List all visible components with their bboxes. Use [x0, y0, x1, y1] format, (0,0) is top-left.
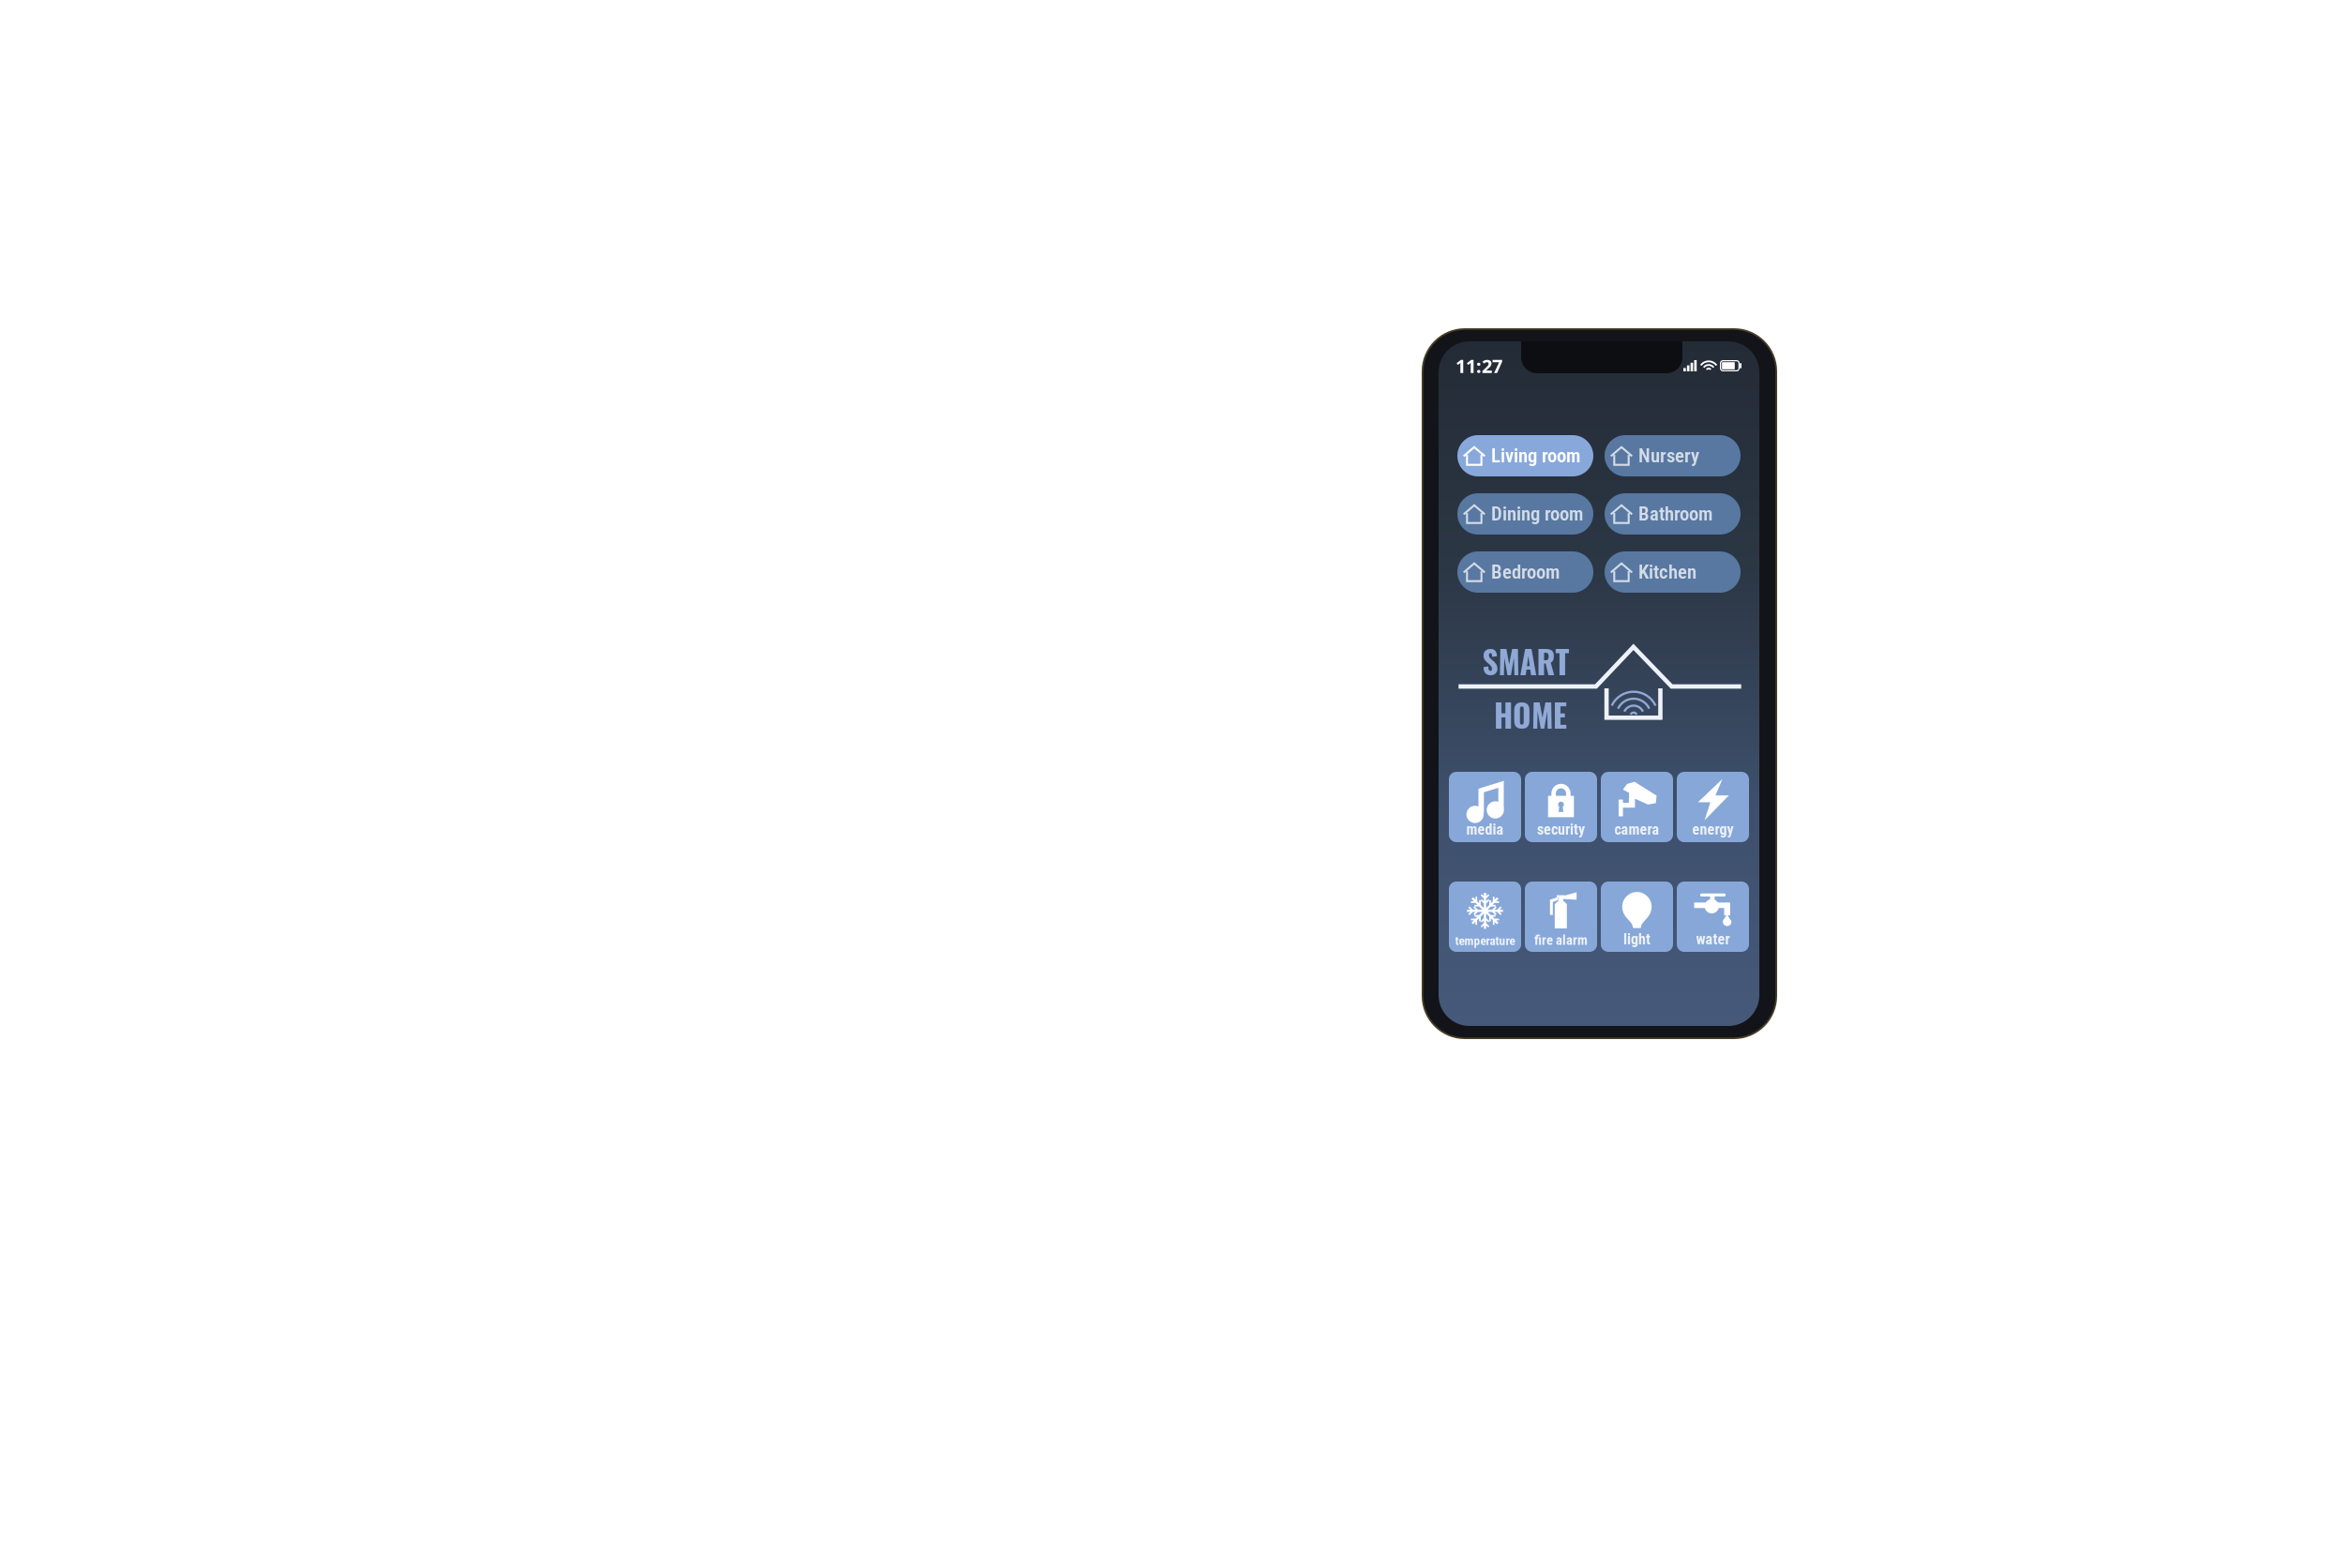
button[interactable]: Dining room: [1457, 493, 1593, 535]
button[interactable]: temperature: [1449, 882, 1521, 952]
staticText: security: [1537, 821, 1585, 838]
button[interactable]: Bathroom: [1605, 493, 1741, 535]
staticText: Living room: [1491, 444, 1580, 467]
staticText: temperature: [1455, 933, 1515, 948]
button[interactable]: Kitchen: [1605, 551, 1741, 593]
button[interactable]: security: [1525, 772, 1597, 842]
button[interactable]: light: [1601, 882, 1673, 952]
button[interactable]: Bedroom: [1457, 551, 1593, 593]
staticText: fire alarm: [1534, 932, 1588, 948]
staticText: HOME: [1494, 691, 1567, 738]
button[interactable]: Living room: [1457, 435, 1593, 476]
staticText: camera: [1614, 821, 1659, 838]
staticText: 11:27: [1455, 353, 1502, 378]
staticText: SMART: [1482, 638, 1569, 684]
button[interactable]: fire alarm: [1525, 882, 1597, 952]
staticText: Bathroom: [1638, 503, 1712, 525]
button[interactable]: camera: [1601, 772, 1673, 842]
staticText: energy: [1692, 821, 1734, 838]
button[interactable]: Nursery: [1605, 435, 1741, 476]
staticText: Dining room: [1491, 503, 1583, 525]
button[interactable]: energy: [1677, 772, 1749, 842]
staticText: Kitchen: [1638, 561, 1696, 583]
staticText: media: [1466, 821, 1504, 838]
staticText: Bedroom: [1491, 561, 1560, 583]
button[interactable]: media: [1449, 772, 1521, 842]
button[interactable]: water: [1677, 882, 1749, 952]
staticText: light: [1623, 930, 1651, 948]
staticText: water: [1696, 930, 1730, 948]
staticText: Nursery: [1638, 444, 1699, 467]
